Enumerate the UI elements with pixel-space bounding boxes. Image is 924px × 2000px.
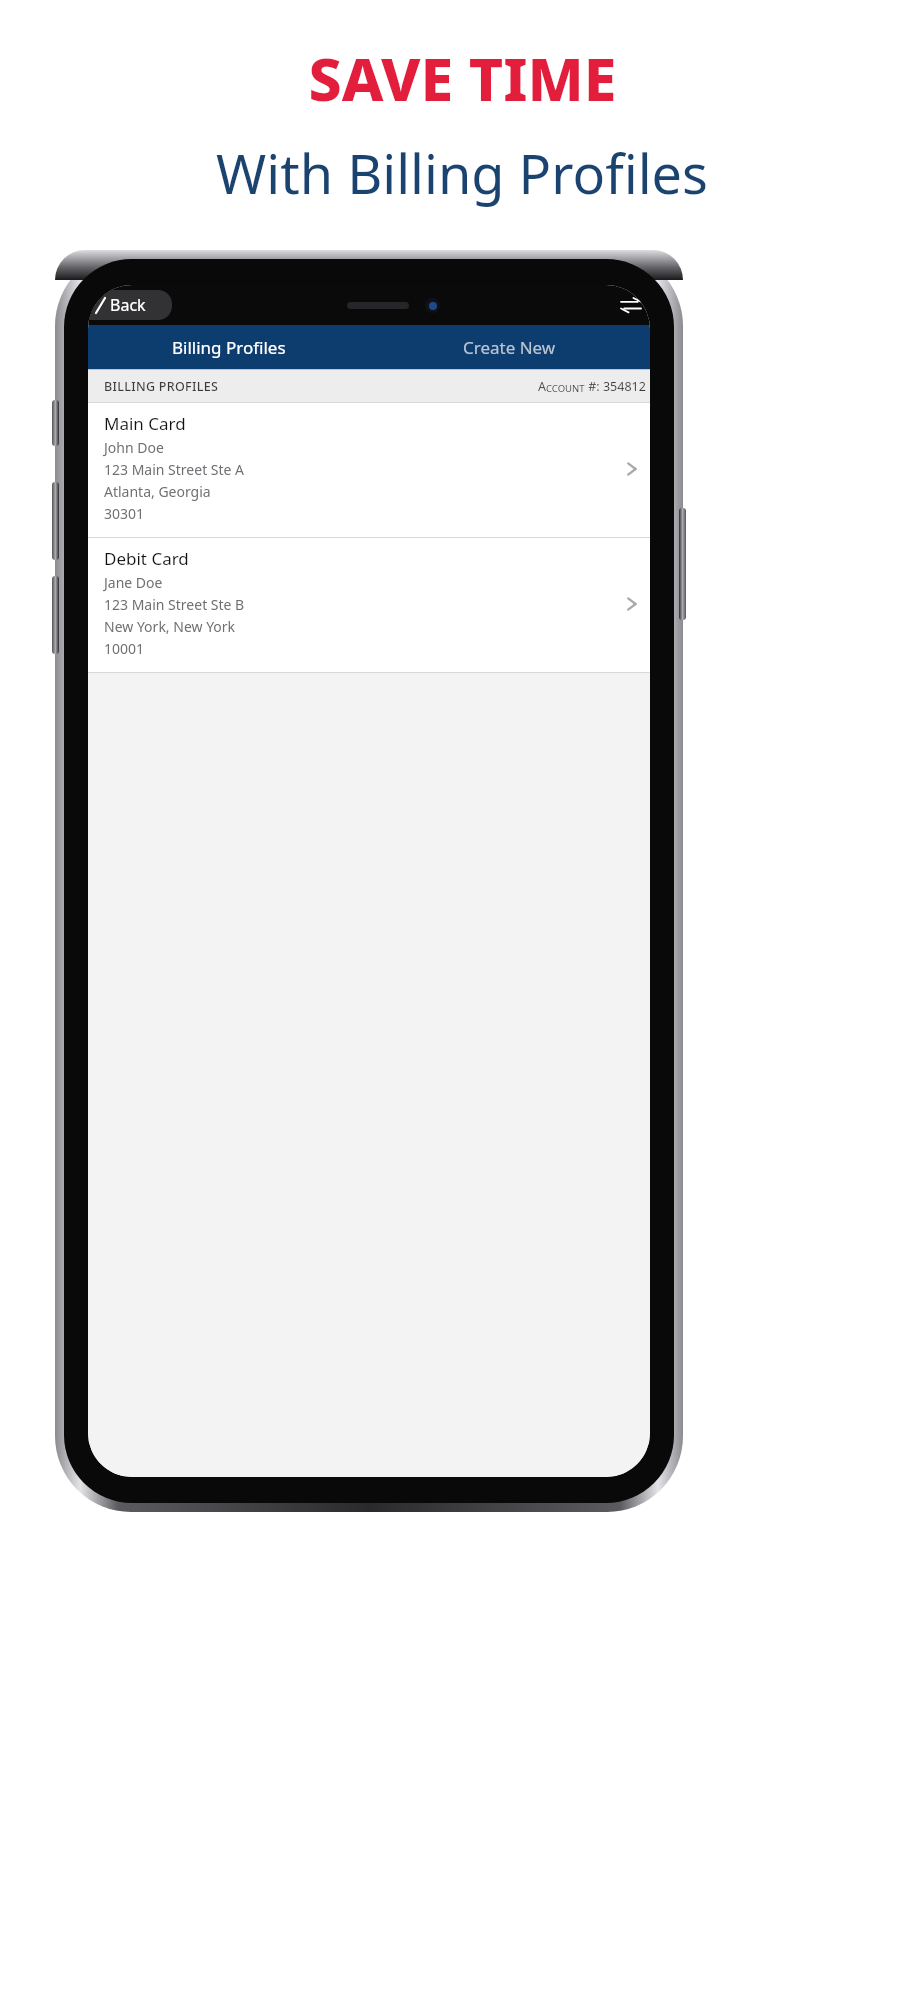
staticText: New York, New York bbox=[104, 617, 236, 636]
staticText: John Doe bbox=[104, 438, 164, 457]
staticText: Back bbox=[110, 294, 146, 316]
staticText: Main Card bbox=[104, 412, 186, 435]
button[interactable]: Billing Profiles bbox=[88, 325, 369, 369]
staticText: SAVE TIME bbox=[308, 38, 617, 118]
staticText: CCOUNT bbox=[546, 382, 585, 395]
staticText: 30301 bbox=[104, 504, 145, 523]
staticText: 10001 bbox=[104, 639, 145, 658]
button[interactable]: Create New bbox=[369, 325, 650, 369]
button[interactable]: Back bbox=[88, 290, 172, 320]
staticText: BILLING PROFILES bbox=[104, 378, 219, 395]
staticText: With Billing Profiles bbox=[216, 136, 708, 210]
staticText: 123 Main Street Ste B bbox=[104, 595, 245, 614]
staticText: A bbox=[538, 378, 546, 395]
staticText: #: 354812 bbox=[585, 378, 646, 395]
staticText: Debit Card bbox=[104, 547, 189, 570]
staticText: Jane Doe bbox=[104, 573, 163, 592]
staticText: 123 Main Street Ste A bbox=[104, 460, 245, 479]
button[interactable]: Main Card bbox=[88, 403, 650, 537]
button[interactable]: Debit Card bbox=[88, 538, 650, 672]
staticText: Billing Profiles bbox=[172, 336, 286, 359]
button[interactable]: Switch bbox=[618, 292, 644, 318]
staticText: Atlanta, Georgia bbox=[104, 482, 211, 501]
staticText: Create New bbox=[463, 336, 556, 359]
